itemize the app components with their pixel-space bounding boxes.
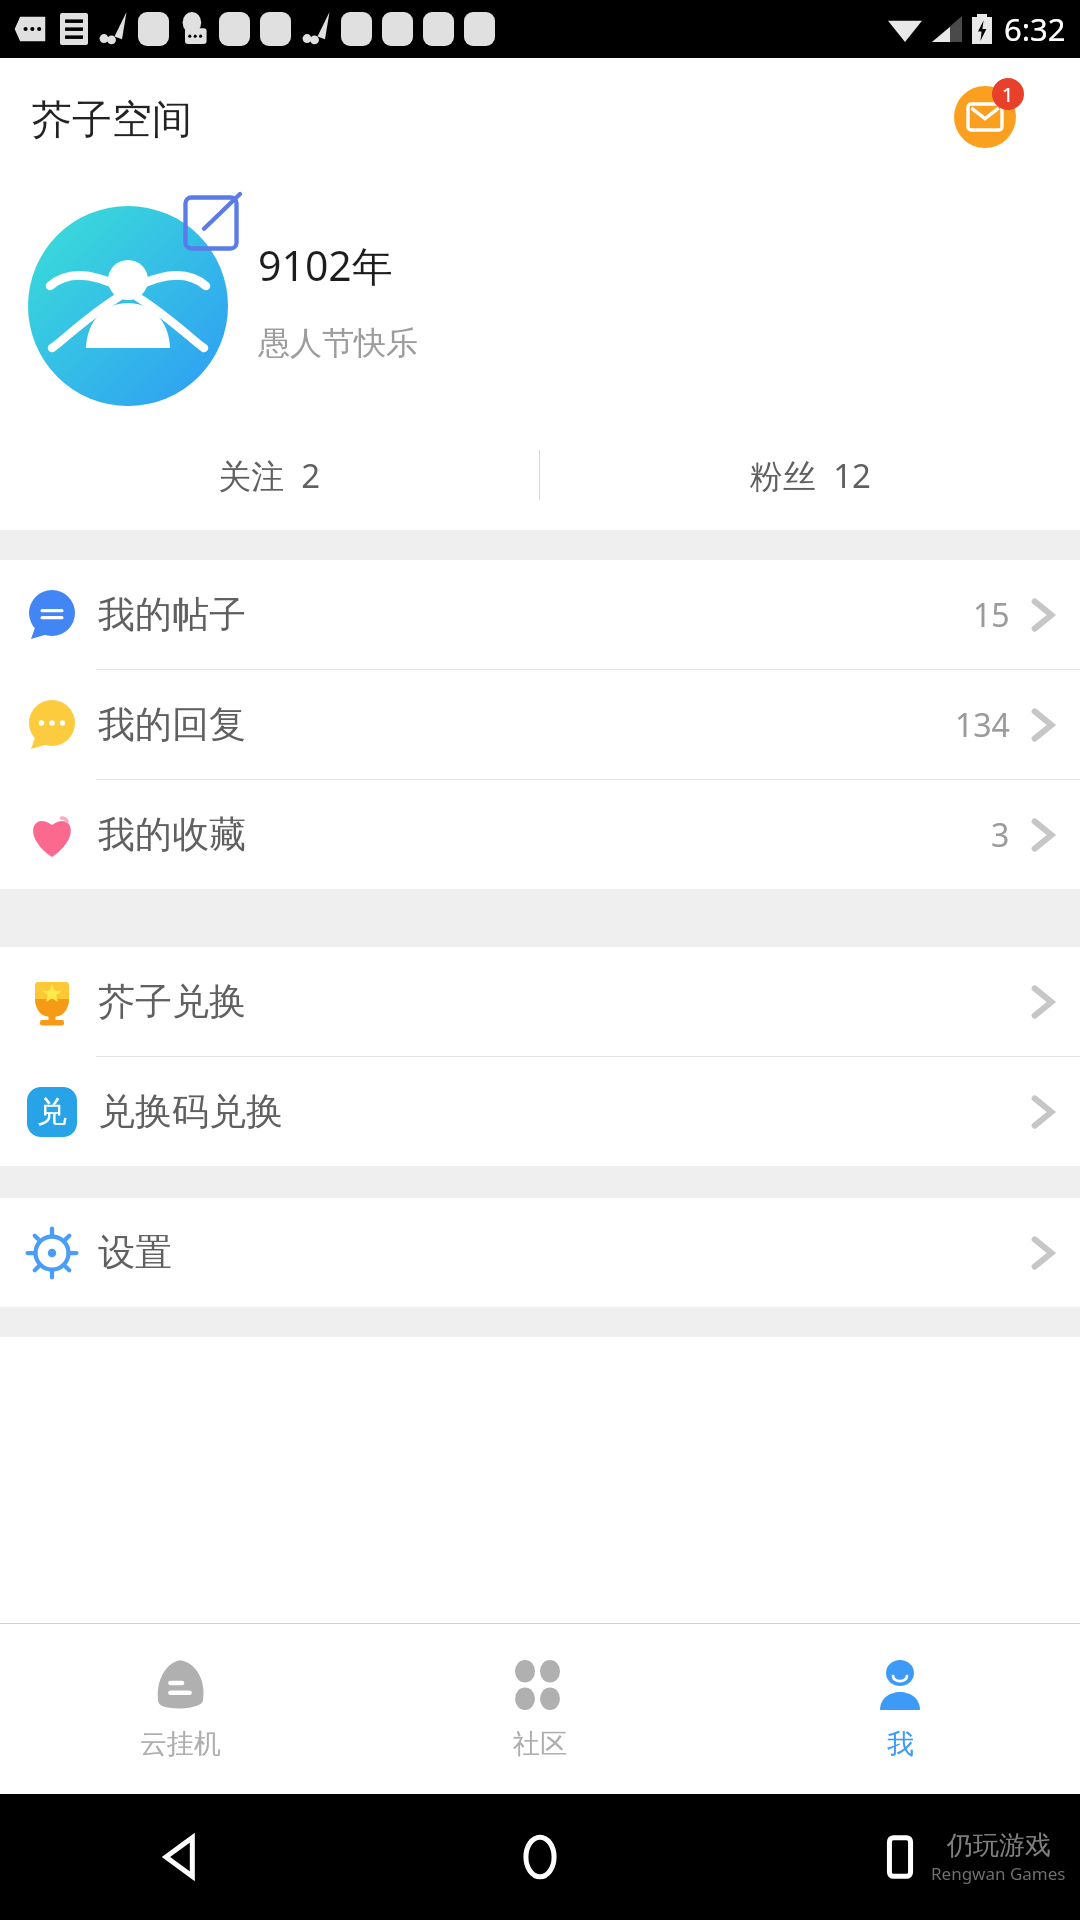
staticText: 3 (991, 813, 1010, 857)
button[interactable]: 芥子兑换 (0, 947, 1080, 1056)
other: Recents (878, 1835, 922, 1879)
button[interactable]: Messages (942, 74, 1028, 160)
button[interactable]: 我的帖子 (0, 560, 1080, 669)
staticText: 设置 (98, 1229, 172, 1276)
staticText: 15 (973, 593, 1010, 637)
button[interactable]: 设置 (0, 1198, 1080, 1307)
staticText: 我 (887, 1727, 914, 1761)
button[interactable]: 兑 (0, 1057, 1080, 1166)
staticText: 我的回复 (98, 701, 246, 748)
staticText: 愚人节快乐 (258, 323, 418, 363)
staticText: 社区 (513, 1727, 567, 1761)
staticText: 我的收藏 (98, 811, 246, 858)
button[interactable]: 云挂机 (0, 1624, 360, 1794)
staticText: 仍玩游戏 (947, 1829, 1051, 1862)
staticText: 9102年 (258, 237, 393, 293)
button[interactable]: 我 (720, 1624, 1080, 1794)
staticText: 芥子兑换 (98, 978, 246, 1025)
other: Home (518, 1835, 562, 1879)
staticText: 1 (1002, 81, 1014, 108)
staticText: 芥子空间 (32, 94, 192, 144)
button[interactable]: 粉丝 12 (540, 420, 1080, 530)
button[interactable]: 我的回复 (0, 670, 1080, 779)
staticText: 粉丝 12 (750, 453, 871, 498)
staticText: Rengwan Games (931, 1862, 1066, 1885)
button[interactable]: 社区 (360, 1624, 720, 1794)
staticText: 关注 2 (218, 453, 321, 498)
staticText: 兑换码兑换 (98, 1088, 283, 1135)
staticText: 我的帖子 (98, 591, 246, 638)
staticText: 6:32 (1004, 8, 1066, 50)
staticText: 兑 (37, 1093, 67, 1131)
button[interactable]: 关注 2 (0, 420, 539, 530)
button[interactable]: Edit avatar (28, 194, 240, 406)
staticText: 134 (955, 703, 1010, 747)
staticText: 云挂机 (140, 1727, 221, 1761)
button[interactable]: 我的收藏 (0, 780, 1080, 889)
other: Back (158, 1835, 202, 1879)
